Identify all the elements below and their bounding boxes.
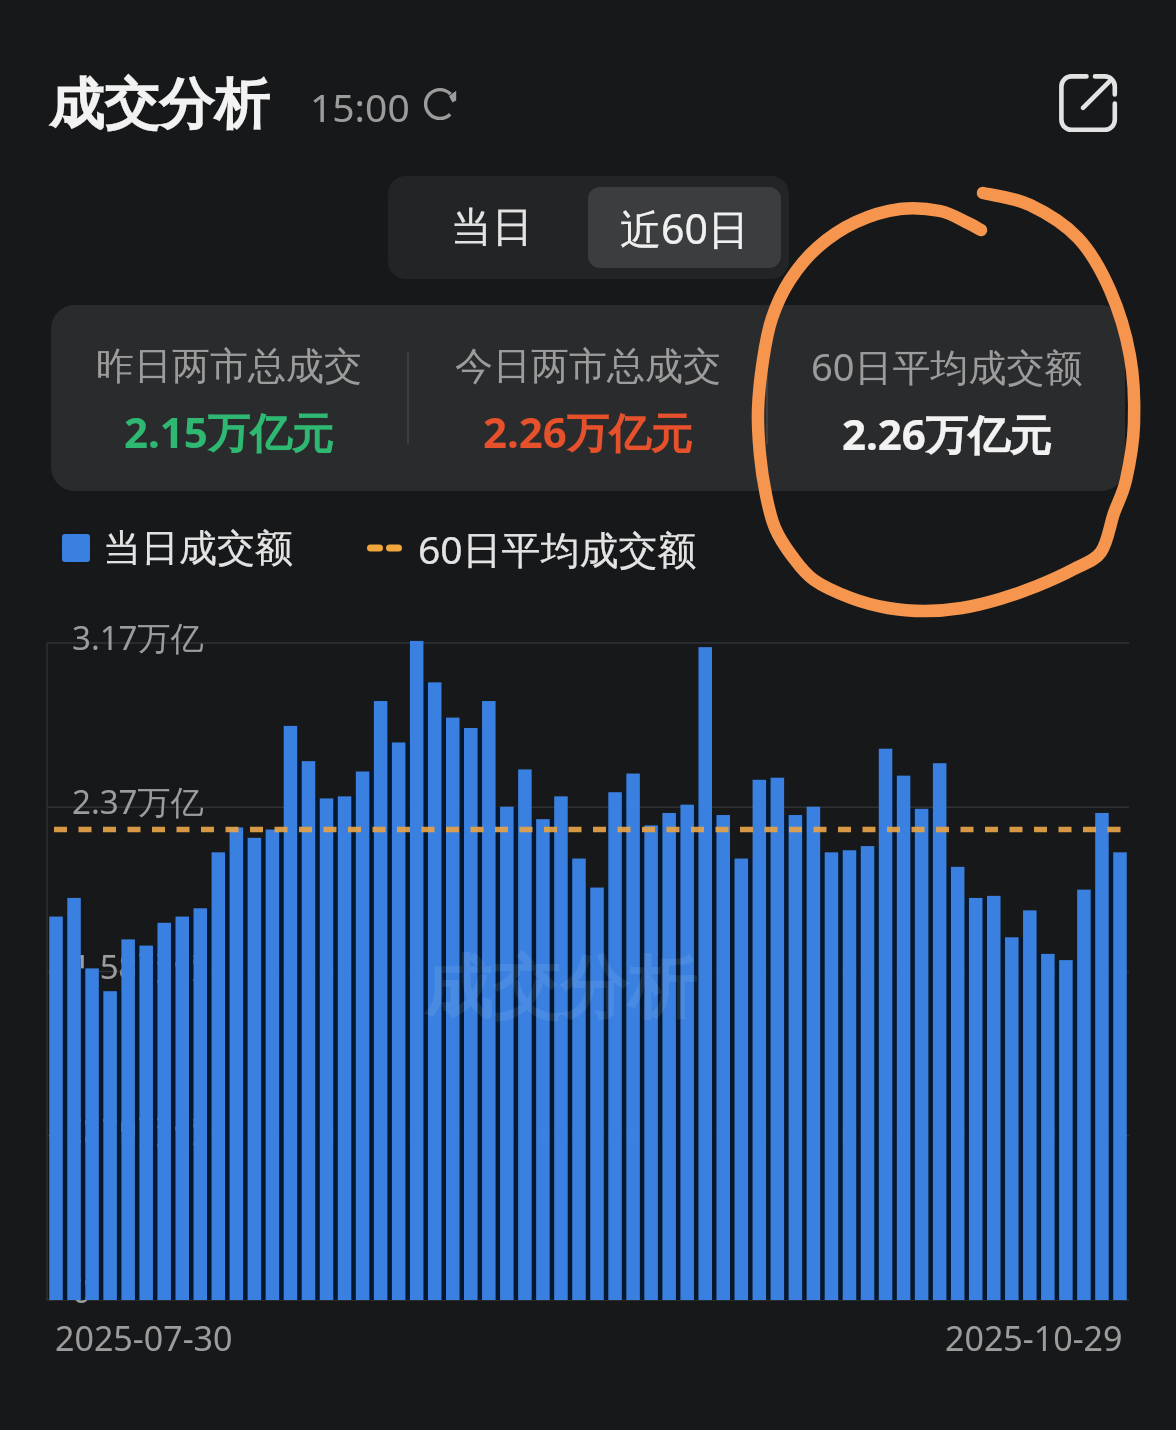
staticText: 今日两市总成交 bbox=[455, 342, 721, 390]
staticText: 2025-10-29 bbox=[945, 1315, 1123, 1361]
staticText: 0.79万亿 bbox=[72, 1108, 204, 1153]
staticText: 成交分析 bbox=[424, 946, 696, 1032]
button[interactable]: 60日平均成交额 bbox=[768, 305, 1125, 491]
staticText: 60日平均成交额 bbox=[811, 340, 1083, 392]
staticText: 2.37万亿 bbox=[72, 779, 204, 824]
staticText: 3.17万亿 bbox=[72, 615, 204, 660]
staticText: 2.26万亿元 bbox=[842, 405, 1052, 462]
staticText: 近60日 bbox=[620, 200, 749, 256]
staticText: 2.15万亿元 bbox=[124, 403, 334, 460]
staticText: 2025-07-30 bbox=[55, 1315, 233, 1361]
staticText: 当日成交额 bbox=[103, 524, 293, 572]
staticText: 成交分析 bbox=[49, 70, 269, 139]
button[interactable]: 今日两市总成交 bbox=[409, 305, 766, 491]
button[interactable]: 当日 bbox=[396, 187, 588, 268]
button[interactable]: 近60日 bbox=[588, 187, 781, 268]
staticText: 2.26万亿元 bbox=[483, 403, 693, 460]
staticText: 15:00 bbox=[310, 80, 410, 133]
button[interactable]: Refresh bbox=[418, 82, 462, 126]
staticText: 60日平均成交额 bbox=[418, 522, 697, 575]
button[interactable]: Open in new window bbox=[1047, 62, 1129, 144]
staticText: 昨日两市总成交 bbox=[96, 342, 362, 390]
staticText: 1.58万亿 bbox=[72, 944, 204, 989]
button[interactable]: 昨日两市总成交 bbox=[51, 305, 407, 491]
staticText: 0 bbox=[72, 1268, 91, 1313]
staticText: 当日 bbox=[451, 202, 533, 254]
